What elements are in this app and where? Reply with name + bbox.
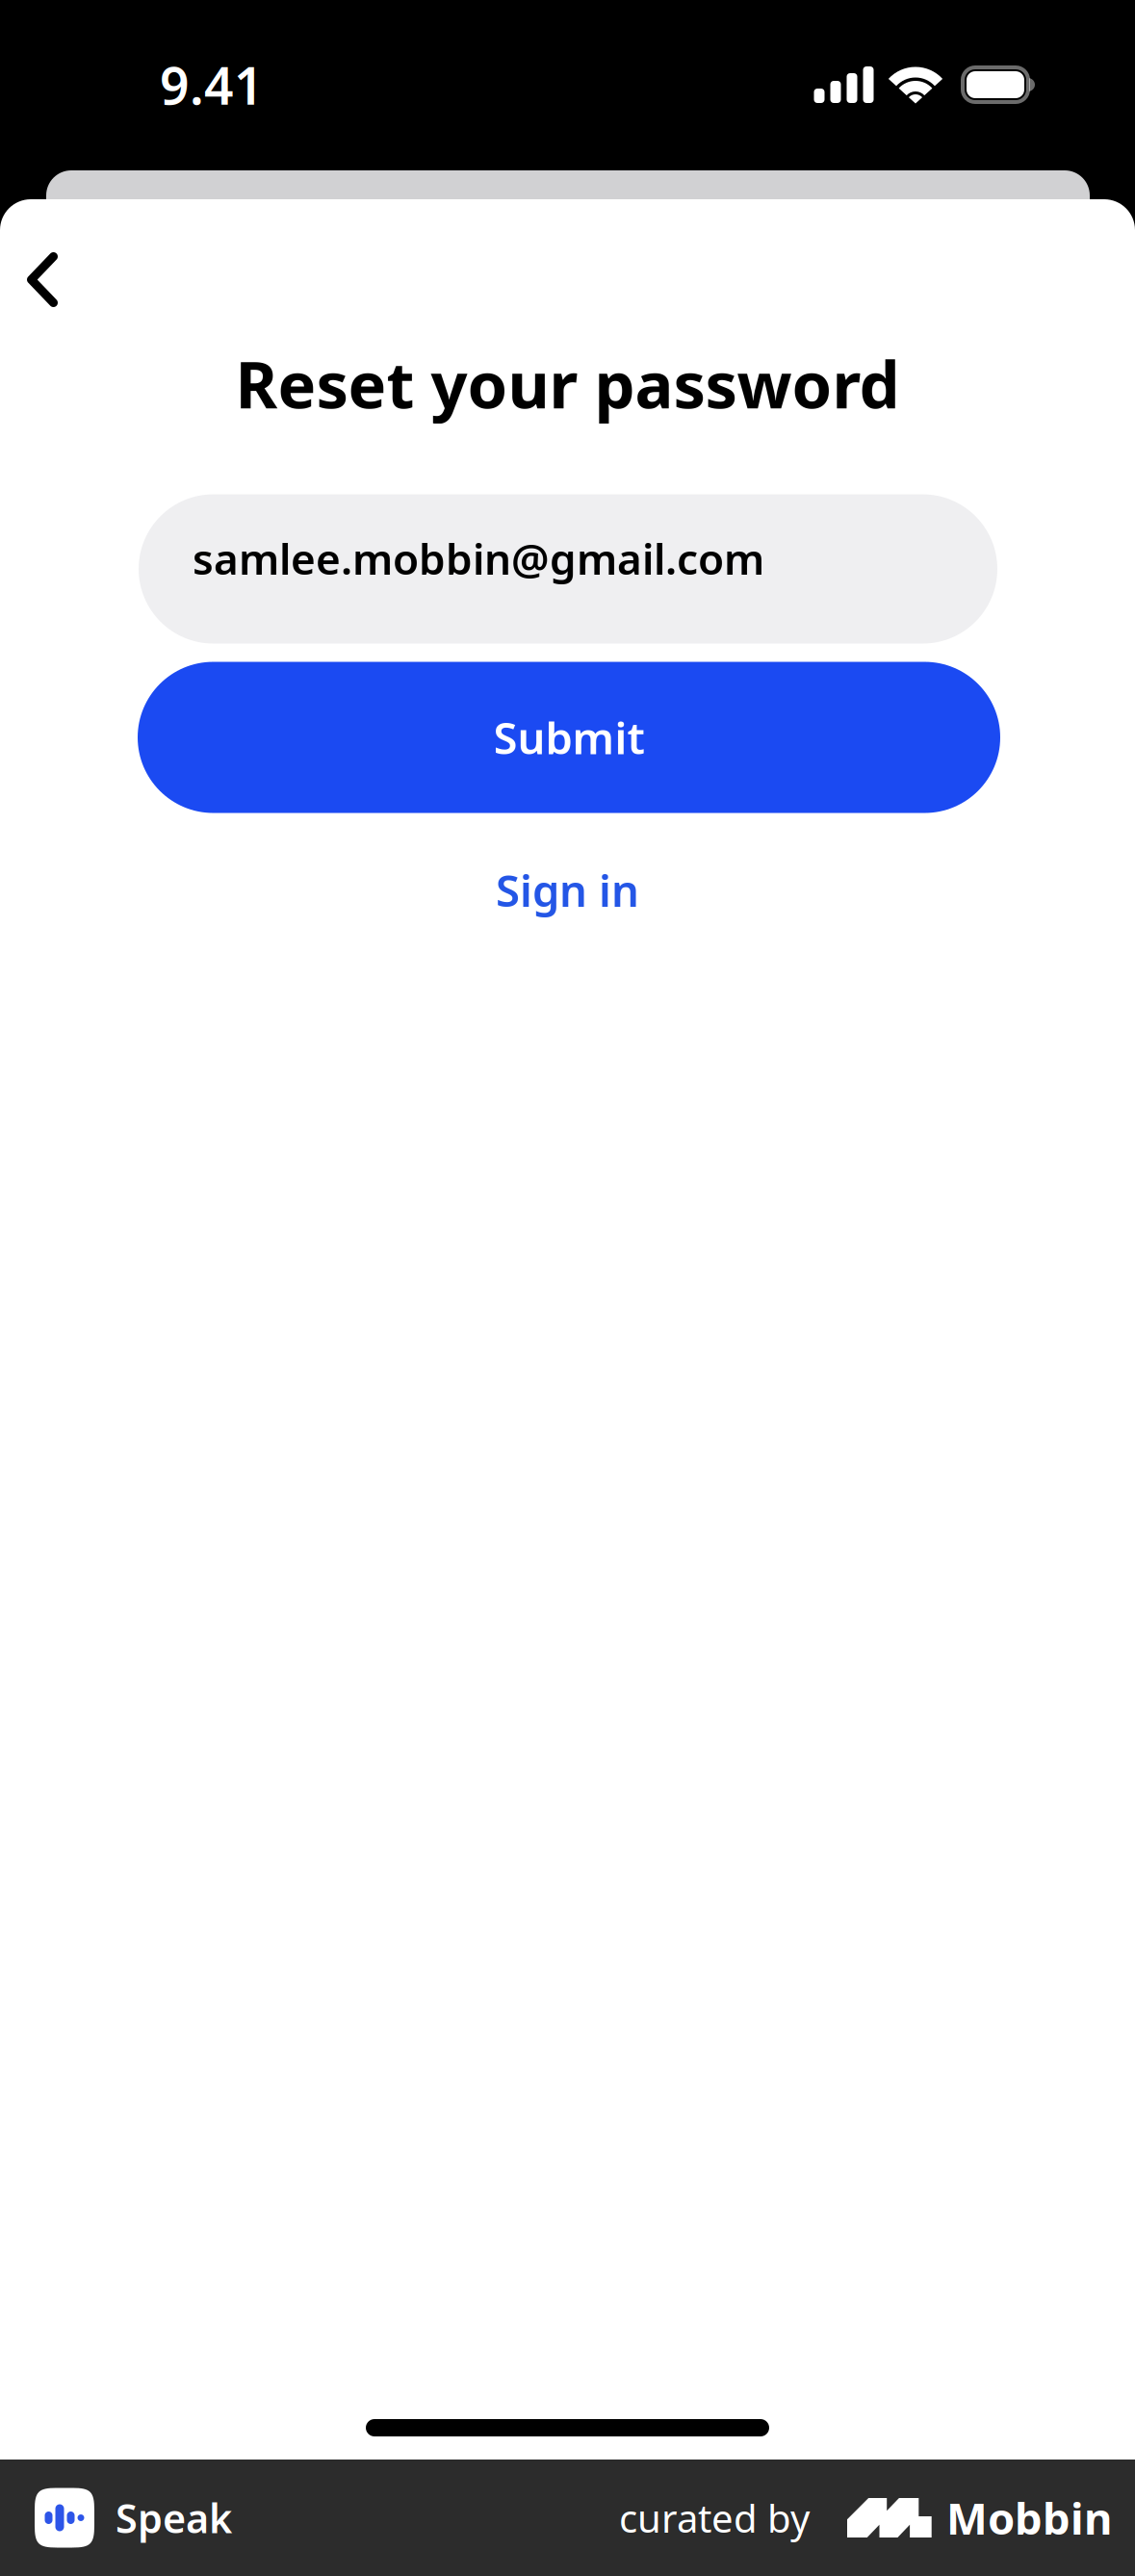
button[interactable]: Sign in — [0, 852, 1135, 927]
button[interactable]: curated by — [619, 2489, 1112, 2547]
staticText: curated by — [619, 2492, 810, 2543]
staticText: samlee.mobbin@gmail.com — [193, 530, 764, 586]
staticText: Reset your password — [235, 341, 900, 426]
staticText: Submit — [493, 708, 645, 766]
button[interactable]: Speak — [35, 2488, 232, 2548]
staticText: 9.41 — [160, 51, 264, 119]
button[interactable]: Submit — [0, 662, 1135, 813]
staticText: Speak — [116, 2491, 232, 2544]
button[interactable]: samlee.mobbin@gmail.com — [0, 494, 1135, 644]
staticText: Mobbin — [946, 2489, 1112, 2547]
staticText: Sign in — [496, 861, 639, 919]
button[interactable]: Back — [0, 252, 1135, 307]
